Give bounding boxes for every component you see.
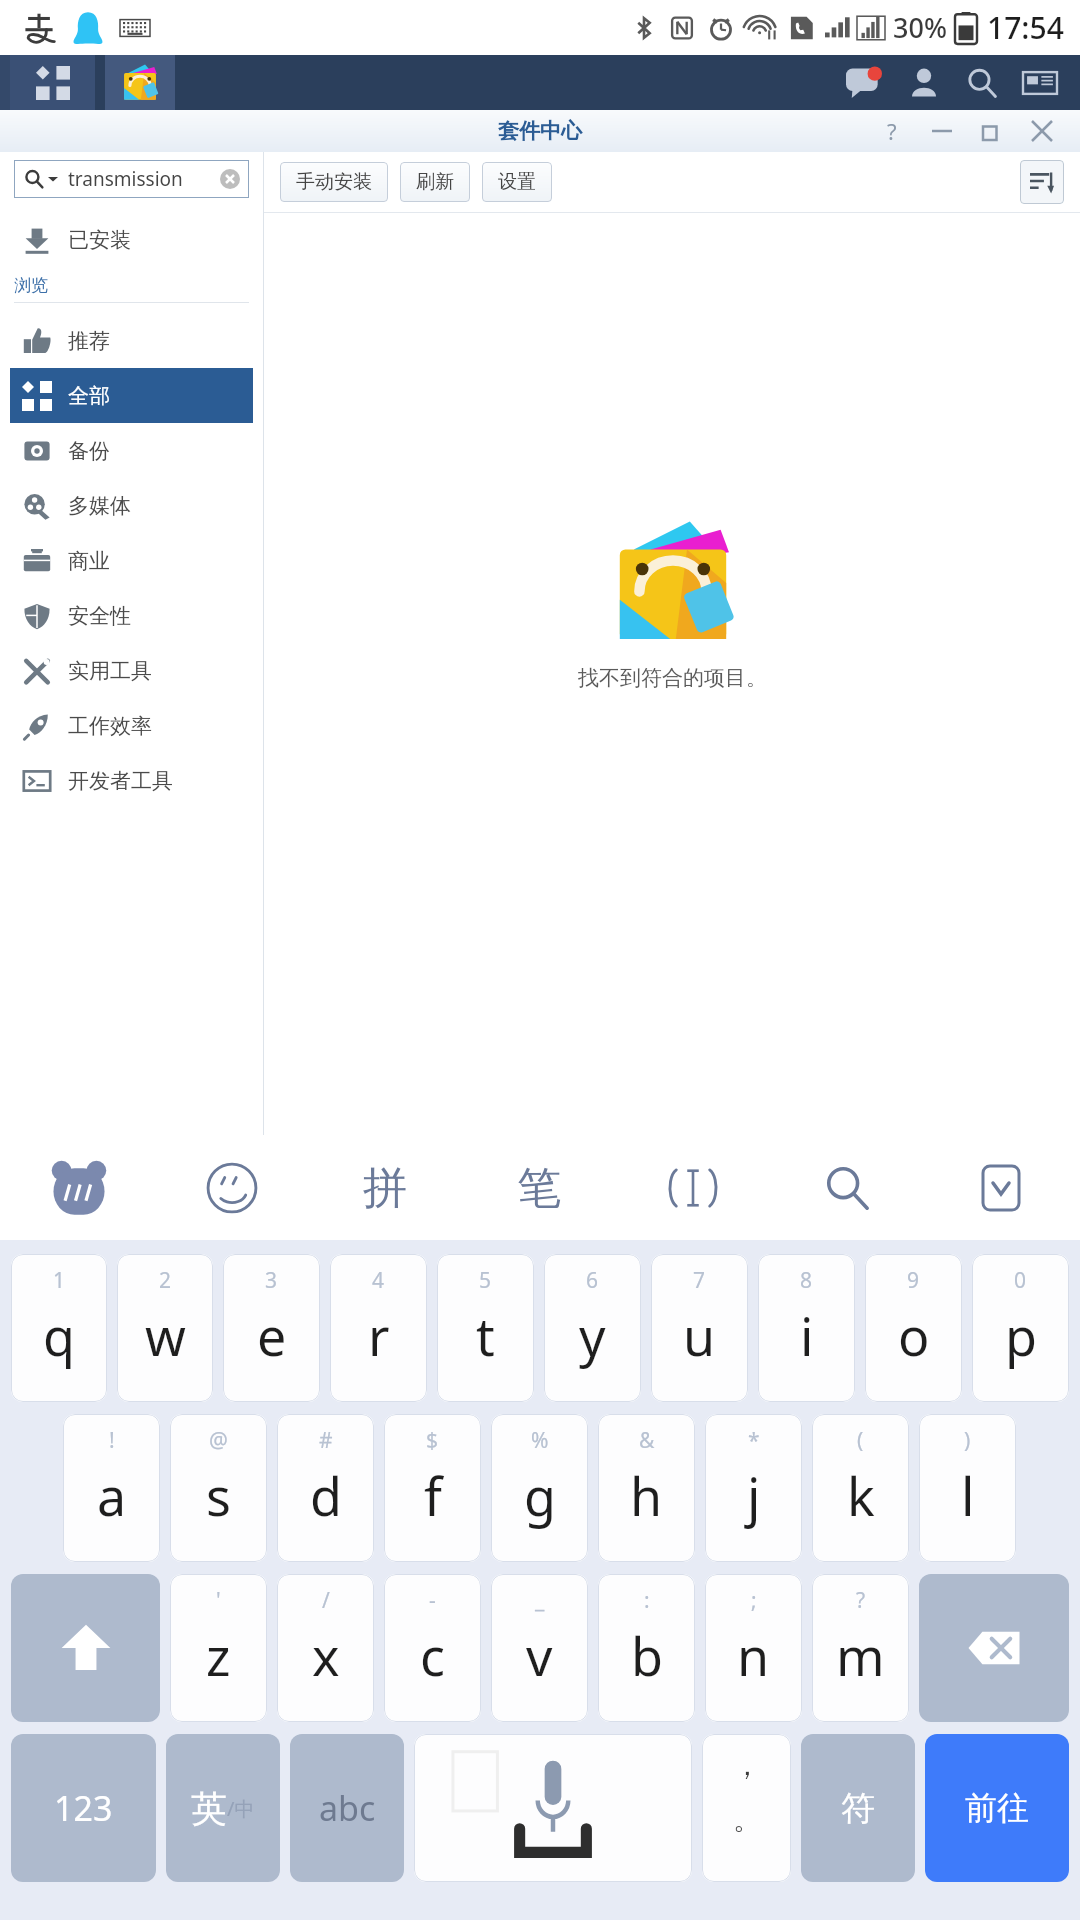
staticText: /中	[227, 1795, 255, 1822]
button[interactable]: Baidu input	[44, 1153, 114, 1223]
button[interactable]: 9	[865, 1254, 962, 1402]
button[interactable]: Package Center	[105, 55, 175, 110]
staticText: p	[1005, 1300, 1037, 1371]
button[interactable]: Maximize	[974, 113, 1010, 149]
button[interactable]: 笔	[504, 1153, 574, 1223]
staticText: 。	[733, 1802, 761, 1837]
staticText: v	[526, 1620, 553, 1691]
button[interactable]: )	[919, 1414, 1016, 1562]
button[interactable]: User	[904, 63, 944, 103]
button[interactable]: 全部	[10, 368, 253, 423]
staticText: 123	[54, 1785, 113, 1831]
staticText: 2	[159, 1266, 172, 1295]
button[interactable]: *	[705, 1414, 802, 1562]
button[interactable]: 拼	[350, 1153, 420, 1223]
staticText: z	[206, 1620, 231, 1691]
button[interactable]: ;	[705, 1574, 802, 1722]
button[interactable]: abc	[290, 1734, 404, 1882]
button[interactable]: 开发者工具	[10, 753, 253, 808]
staticText: %	[531, 1426, 549, 1455]
staticText: b	[631, 1620, 663, 1691]
button[interactable]: 设置	[482, 162, 552, 202]
staticText: 1	[53, 1266, 66, 1295]
button[interactable]: Cursor edit	[658, 1153, 728, 1223]
button[interactable]: #	[277, 1414, 374, 1562]
button[interactable]: 4	[330, 1254, 427, 1402]
button[interactable]: Clear search	[215, 164, 245, 194]
button[interactable]: Emoji	[197, 1153, 267, 1223]
button[interactable]: Backspace	[919, 1574, 1069, 1722]
button[interactable]: 5	[437, 1254, 534, 1402]
staticText: $	[426, 1426, 439, 1455]
button[interactable]: :	[598, 1574, 695, 1722]
button[interactable]: 8	[758, 1254, 855, 1402]
button[interactable]: 刷新	[400, 162, 470, 202]
button[interactable]: Shift	[11, 1574, 160, 1722]
staticText: 商业	[68, 548, 110, 574]
button[interactable]: _	[491, 1574, 588, 1722]
button[interactable]: Notifications	[842, 61, 886, 105]
staticText: g	[524, 1460, 556, 1531]
button[interactable]: 已安装	[10, 212, 253, 267]
button[interactable]: Search	[812, 1153, 882, 1223]
staticText: '	[216, 1586, 221, 1615]
staticText: transmission	[68, 166, 183, 192]
staticText: 套件中心	[498, 118, 582, 144]
button[interactable]: Sort	[1020, 160, 1064, 204]
staticText: 找不到符合的项目。	[578, 665, 767, 691]
button[interactable]: %	[491, 1414, 588, 1562]
staticText: (	[857, 1426, 864, 1455]
button[interactable]: 备份	[10, 423, 253, 478]
button[interactable]: @	[170, 1414, 267, 1562]
button[interactable]: (	[812, 1414, 909, 1562]
button[interactable]: /	[277, 1574, 374, 1722]
staticText: &	[639, 1426, 655, 1455]
button[interactable]: Main menu	[10, 55, 95, 110]
button[interactable]: 1	[11, 1254, 107, 1402]
button[interactable]: 安全性	[10, 588, 253, 643]
staticText: -	[429, 1586, 436, 1615]
button[interactable]: 符	[801, 1734, 915, 1882]
button[interactable]: ?	[812, 1574, 909, 1722]
button[interactable]: 前往	[925, 1734, 1069, 1882]
staticText: 浏览	[14, 275, 48, 296]
button[interactable]: Help	[874, 113, 910, 149]
staticText: abc	[319, 1785, 376, 1831]
button[interactable]: 手动安装	[280, 162, 388, 202]
staticText: 9	[907, 1266, 920, 1295]
button[interactable]: 推荐	[10, 313, 253, 368]
button[interactable]: Minimize	[924, 113, 960, 149]
button[interactable]: -	[384, 1574, 481, 1722]
staticText: 刷新	[416, 170, 454, 194]
button[interactable]: 工作效率	[10, 698, 253, 753]
staticText: ，	[733, 1748, 761, 1783]
button[interactable]: Search	[962, 63, 1002, 103]
button[interactable]: $	[384, 1414, 481, 1562]
button[interactable]: 多媒体	[10, 478, 253, 533]
button[interactable]: 123	[11, 1734, 156, 1882]
button[interactable]: !	[63, 1414, 160, 1562]
button[interactable]: '	[170, 1574, 267, 1722]
button[interactable]: 6	[544, 1254, 641, 1402]
button[interactable]: Hide keyboard	[966, 1153, 1036, 1223]
staticText: 符	[841, 1787, 875, 1830]
button[interactable]: ，	[702, 1734, 791, 1882]
button[interactable]: 3	[223, 1254, 320, 1402]
button[interactable]: 0	[972, 1254, 1069, 1402]
button[interactable]: 英	[166, 1734, 280, 1882]
staticText: _	[535, 1586, 545, 1615]
button[interactable]: Close	[1024, 113, 1060, 149]
staticText: 5	[479, 1266, 492, 1295]
button[interactable]: &	[598, 1414, 695, 1562]
button[interactable]: 2	[117, 1254, 213, 1402]
button[interactable]: 实用工具	[10, 643, 253, 698]
button[interactable]: Widgets	[1020, 63, 1060, 103]
button[interactable]: transmission	[14, 160, 249, 198]
staticText: 前往	[965, 1788, 1029, 1828]
button[interactable]: 商业	[10, 533, 253, 588]
staticText: #	[319, 1426, 333, 1455]
staticText: a	[97, 1460, 127, 1531]
button[interactable]: Space	[414, 1734, 692, 1882]
button[interactable]: 7	[651, 1254, 748, 1402]
staticText: k	[847, 1460, 875, 1531]
